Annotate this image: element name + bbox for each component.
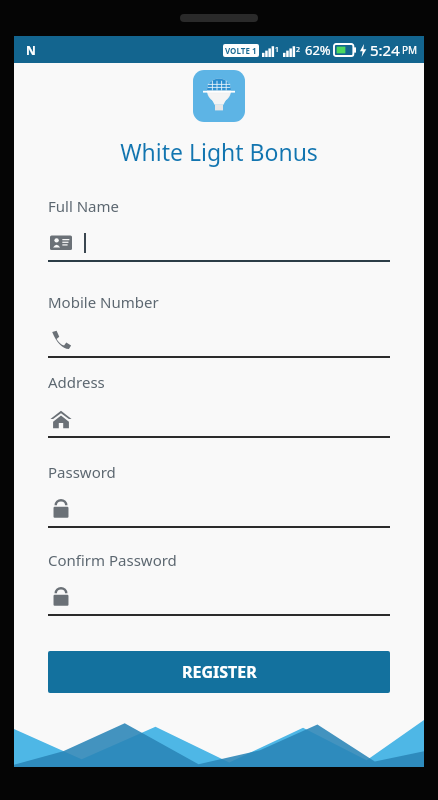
- button[interactable]: Mobile Number: [48, 292, 390, 358]
- staticText: 5:24: [370, 40, 400, 60]
- staticText: 1: [275, 45, 280, 55]
- staticText: Mobile Number: [48, 292, 159, 312]
- staticText: Confirm Password: [48, 550, 177, 570]
- button[interactable]: REGISTER: [48, 651, 390, 693]
- staticText: Password: [48, 462, 116, 482]
- staticText: N: [26, 42, 36, 58]
- button[interactable]: Confirm Password: [48, 550, 390, 616]
- staticText: VOLTE 1: [225, 45, 257, 56]
- button[interactable]: Address: [48, 372, 390, 438]
- staticText: Address: [48, 372, 105, 392]
- staticText: Full Name: [48, 196, 119, 216]
- staticText: 62%: [305, 41, 331, 59]
- button[interactable]: App icon: [193, 70, 245, 122]
- staticText: 2: [296, 45, 301, 55]
- staticText: PM: [402, 43, 418, 57]
- staticText: REGISTER: [182, 661, 257, 683]
- button[interactable]: Password: [48, 462, 390, 528]
- staticText: White Light Bonus: [120, 136, 318, 167]
- button[interactable]: Full Name: [48, 196, 390, 262]
